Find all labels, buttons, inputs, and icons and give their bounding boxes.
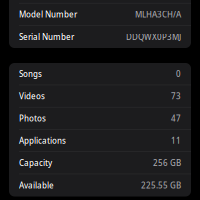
button[interactable]: Photos [9, 107, 191, 130]
staticText: Applications [19, 135, 66, 146]
staticText: 73 [171, 91, 181, 101]
staticText: 0 [176, 68, 181, 79]
staticText: Videos [19, 91, 45, 101]
button[interactable]: Capacity [9, 152, 191, 174]
button[interactable]: Applications [9, 130, 191, 152]
staticText: 225.55 GB [141, 180, 181, 191]
staticText: MLHA3CH/A [135, 9, 181, 20]
button[interactable]: Songs [9, 63, 191, 85]
staticText: Photos [19, 113, 46, 124]
button[interactable]: Model Number [9, 3, 191, 26]
staticText: 47 [171, 113, 181, 124]
button[interactable]: Available [9, 174, 191, 196]
staticText: Model Number [19, 9, 77, 20]
staticText: Capacity [19, 157, 52, 168]
button[interactable]: Videos [9, 85, 191, 107]
staticText: Songs [19, 68, 42, 79]
button[interactable]: Serial Number [9, 26, 191, 48]
staticText: Serial Number [19, 32, 74, 42]
staticText: Available [19, 180, 54, 191]
staticText: 11 [171, 135, 181, 146]
staticText: 256 GB [153, 157, 181, 168]
staticText: DDQWX0P3MJ [126, 32, 181, 42]
